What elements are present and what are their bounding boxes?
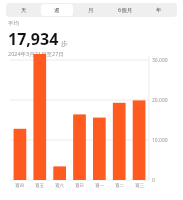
button[interactable]: 月 (75, 4, 107, 16)
button[interactable]: 年 (143, 4, 175, 16)
staticText: 週五 (35, 183, 44, 189)
staticText: 17,934 (8, 28, 59, 50)
staticText: 週日 (75, 183, 84, 189)
staticText: 6個月 (118, 6, 133, 14)
staticText: 30,000 (152, 57, 168, 64)
staticText: 10,000 (152, 137, 168, 144)
staticText: 週四 (15, 183, 24, 189)
staticText: 週三 (135, 183, 144, 189)
staticText: 步 (61, 40, 68, 48)
button[interactable]: 週 (41, 4, 73, 16)
staticText: 平均 (8, 20, 19, 27)
staticText: 週二 (115, 183, 124, 189)
button[interactable]: 6個月 (109, 4, 141, 16)
staticText: 2024年3月21日至27日 (8, 50, 64, 58)
staticText: 週六 (55, 183, 64, 189)
staticText: 20,000 (152, 97, 168, 104)
staticText: 0 (152, 177, 155, 184)
button[interactable]: 天 (8, 4, 39, 16)
staticText: 年 (156, 7, 162, 14)
staticText: 週 (54, 7, 60, 14)
staticText: 月 (88, 7, 94, 14)
staticText: 天 (21, 7, 27, 14)
staticText: 週一 (95, 183, 104, 189)
